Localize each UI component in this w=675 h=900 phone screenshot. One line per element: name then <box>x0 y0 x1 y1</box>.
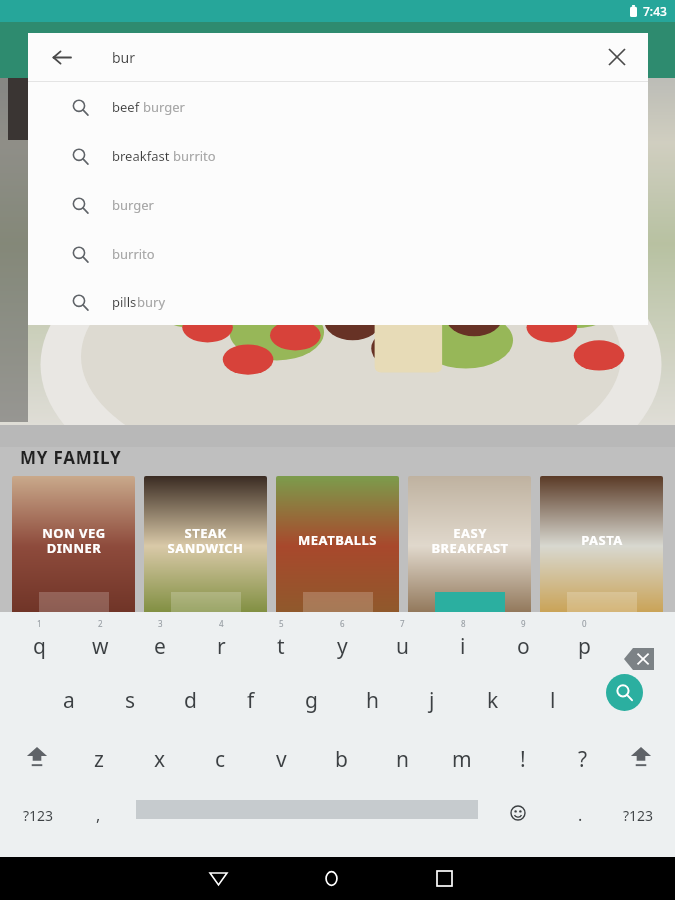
button[interactable]: f <box>228 677 274 723</box>
staticText: 7 <box>400 618 405 629</box>
button[interactable]: Home <box>307 857 355 900</box>
button[interactable]: 5 <box>258 618 304 668</box>
staticText: p <box>578 632 591 661</box>
button[interactable]: 8 <box>440 618 486 668</box>
staticText: y <box>337 632 348 661</box>
button[interactable]: 6 <box>319 618 365 668</box>
staticText: h <box>366 686 379 715</box>
button[interactable]: pills <box>28 278 648 325</box>
staticText: 9 <box>521 618 526 629</box>
button[interactable]: Back <box>28 33 648 81</box>
button[interactable]: h <box>349 677 395 723</box>
button[interactable]: d <box>167 677 213 723</box>
staticText: 1 <box>37 618 42 629</box>
staticText: t <box>277 632 285 661</box>
staticText: bury <box>137 293 166 311</box>
button[interactable]: 2 <box>77 618 123 668</box>
button[interactable]: NON VEG DINNER <box>12 476 135 616</box>
button[interactable]: EASY BREAKFAST <box>408 476 531 616</box>
button[interactable]: c <box>197 736 243 782</box>
staticText: b <box>335 745 348 774</box>
staticText: k <box>487 686 499 715</box>
button[interactable]: MEATBALLS <box>276 476 399 616</box>
staticText: MY FAMILY <box>20 446 122 469</box>
button[interactable]: l <box>530 677 576 723</box>
staticText: . <box>578 804 583 826</box>
button[interactable]: x <box>137 736 183 782</box>
staticText: burger <box>143 98 185 116</box>
staticText: , <box>96 804 101 826</box>
button[interactable]: PASTA <box>540 476 663 616</box>
staticText: 7:43 <box>643 3 667 19</box>
staticText: burrito <box>112 245 155 263</box>
button[interactable]: 4 <box>198 618 244 668</box>
staticText: x <box>154 745 166 774</box>
staticText: 2 <box>98 618 103 629</box>
button[interactable]: burger <box>28 180 648 229</box>
staticText: z <box>94 745 104 774</box>
button[interactable]: Search <box>606 674 643 711</box>
button[interactable]: 0 <box>561 618 607 668</box>
button[interactable]: 3 <box>137 618 183 668</box>
button[interactable]: b <box>318 736 364 782</box>
staticText: burger <box>112 196 154 214</box>
staticText: NON VEG DINNER <box>42 524 106 557</box>
staticText: i <box>460 632 466 661</box>
button[interactable]: 9 <box>500 618 546 668</box>
button[interactable]: ? <box>560 736 606 782</box>
button[interactable]: Emoji <box>502 797 534 829</box>
button[interactable]: Recents <box>420 857 468 900</box>
button[interactable]: k <box>470 677 516 723</box>
button[interactable]: Back <box>194 857 242 900</box>
button[interactable]: , <box>80 799 116 831</box>
staticText: STEAK SANDWICH <box>167 524 244 557</box>
button[interactable]: 1 <box>16 618 62 668</box>
staticText: ?123 <box>23 806 54 825</box>
button[interactable]: Back <box>42 38 80 76</box>
staticText: q <box>33 632 46 661</box>
button[interactable]: burrito <box>28 229 648 278</box>
staticText: MEATBALLS <box>298 531 377 549</box>
staticText: 6 <box>340 618 345 629</box>
staticText: w <box>92 632 109 661</box>
staticText: EASY BREAKFAST <box>431 524 509 557</box>
button[interactable]: v <box>258 736 304 782</box>
button[interactable]: 7 <box>379 618 425 668</box>
staticText: 4 <box>219 618 224 629</box>
staticText: beef <box>112 98 143 116</box>
button[interactable]: a <box>46 677 92 723</box>
button[interactable]: breakfast <box>28 131 648 180</box>
staticText: n <box>396 745 409 774</box>
staticText: ! <box>520 745 526 774</box>
button[interactable]: n <box>379 736 425 782</box>
button[interactable]: Backspace <box>622 634 656 658</box>
staticText: l <box>550 686 556 715</box>
button[interactable]: beef <box>28 82 648 131</box>
button[interactable]: m <box>439 736 485 782</box>
staticText: r <box>217 632 226 661</box>
button[interactable]: Shift <box>18 740 56 774</box>
staticText: 3 <box>158 618 163 629</box>
button[interactable]: Shift <box>622 740 660 774</box>
button[interactable]: s <box>107 677 153 723</box>
staticText: bur <box>112 48 136 67</box>
staticText: ? <box>578 745 588 774</box>
button[interactable]: ?123 <box>612 799 664 831</box>
staticText: u <box>396 632 409 661</box>
button[interactable]: z <box>76 736 122 782</box>
staticText: e <box>154 632 166 661</box>
button[interactable]: . <box>564 799 596 831</box>
button[interactable]: g <box>288 677 334 723</box>
button[interactable]: ?123 <box>12 799 64 831</box>
staticText: d <box>184 686 197 715</box>
button[interactable]: ! <box>500 736 546 782</box>
staticText: m <box>452 745 472 774</box>
staticText: o <box>517 632 530 661</box>
button[interactable]: j <box>409 677 455 723</box>
staticText: 8 <box>461 618 466 629</box>
staticText: PASTA <box>581 531 623 549</box>
staticText: breakfast <box>112 147 173 165</box>
button[interactable]: Clear <box>598 38 636 76</box>
button[interactable]: STEAK SANDWICH <box>144 476 267 616</box>
